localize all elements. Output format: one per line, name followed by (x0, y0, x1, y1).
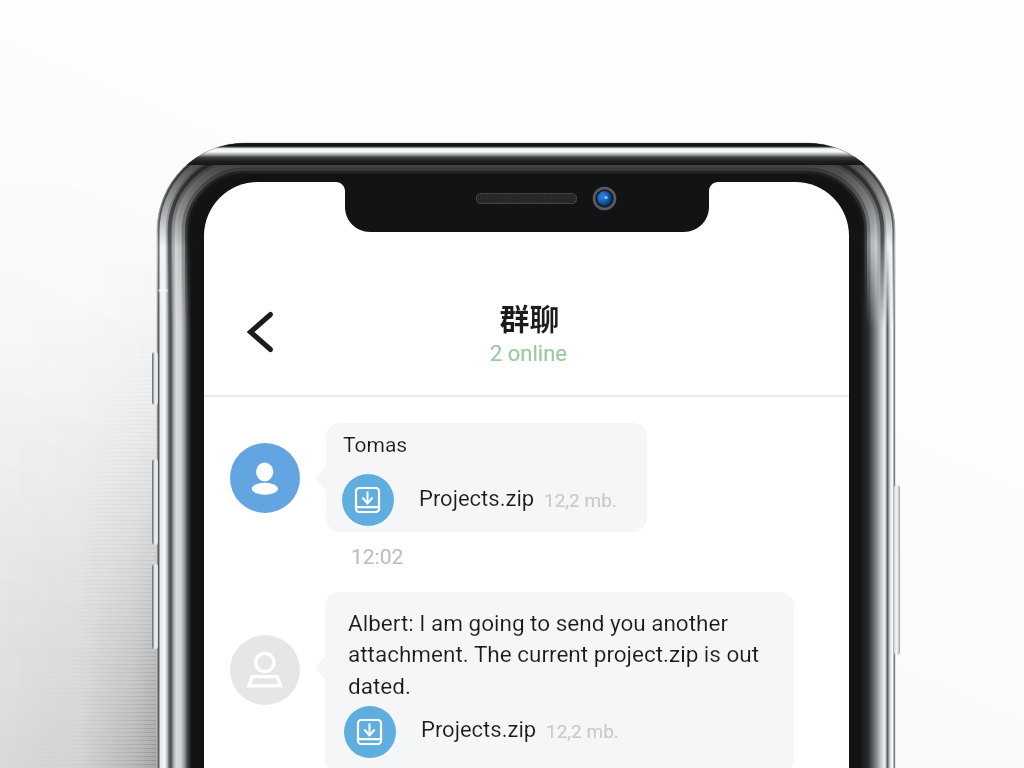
staticText: 2 online (206, 341, 849, 367)
staticText: Projects.zip (421, 717, 537, 743)
button[interactable]: Tomas avatar (230, 443, 300, 513)
button[interactable]: Back (238, 300, 284, 364)
button[interactable]: Albert avatar (230, 635, 300, 705)
staticText: 群聊 (207, 295, 849, 338)
button[interactable] (326, 423, 647, 532)
staticText: 12:02 (351, 545, 404, 570)
button[interactable]: Download file (342, 474, 394, 526)
staticText: Albert: I am going to send you another a… (348, 610, 778, 700)
staticText: 12,2 mb. (546, 720, 619, 742)
button[interactable]: Download file (344, 706, 396, 758)
staticText: Projects.zip (419, 486, 535, 512)
button[interactable] (325, 592, 794, 768)
staticText: Tomas (343, 433, 408, 458)
staticText: 12,2 mb. (544, 489, 617, 511)
